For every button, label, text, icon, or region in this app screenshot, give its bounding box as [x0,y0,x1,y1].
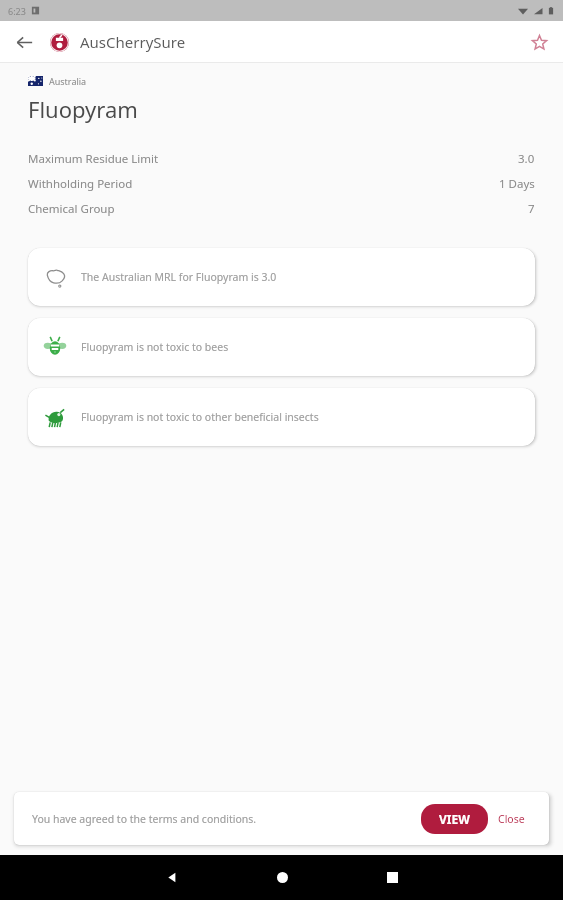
staticText: Close [498,812,525,826]
staticText: Fluopyram [28,94,138,124]
staticText: You have agreed to the terms and conditi… [32,812,421,826]
button[interactable]: Back [8,26,40,58]
button[interactable]: Recents [337,855,447,900]
staticText: Withholding Period [28,176,499,192]
staticText: The Australian MRL for Fluopyram is 3.0 [81,270,277,284]
staticText: Chemical Group [28,201,528,217]
staticText: VIEW [439,811,470,827]
button[interactable]: The Australian MRL for Fluopyram is 3.0 [28,248,535,306]
button[interactable]: Home [227,855,337,900]
button[interactable]: Favourite [523,26,555,58]
staticText: AusCherrySure [80,32,186,52]
button[interactable]: Fluopyram is not toxic to bees [28,318,535,376]
button[interactable]: Fluopyram is not toxic to other benefici… [28,388,535,446]
staticText: Fluopyram is not toxic to bees [81,340,229,354]
staticText: Australia [49,75,87,87]
staticText: Fluopyram is not toxic to other benefici… [81,410,319,424]
staticText: 1 Days [499,176,535,192]
button[interactable]: Close [488,805,535,833]
staticText: 3.0 [518,151,535,167]
staticText: 7 [528,201,535,217]
staticText: Maximum Residue Limit [28,151,518,167]
button[interactable]: Chemical Group [0,196,563,221]
staticText: 6:23 [8,5,26,17]
button[interactable]: Back [117,855,227,900]
button[interactable]: Withholding Period [0,171,563,196]
button[interactable]: Maximum Residue Limit [0,146,563,171]
button[interactable]: VIEW [421,804,488,834]
